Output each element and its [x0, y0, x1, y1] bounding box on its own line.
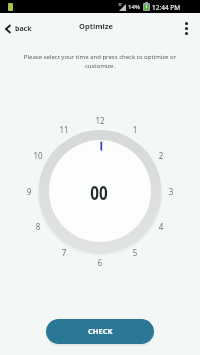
staticText: 3 [163, 186, 179, 197]
staticText: back [15, 24, 32, 34]
staticText: Optimize [56, 21, 136, 31]
staticText: 4 [153, 221, 169, 232]
staticText: 12:44 PM [152, 3, 198, 11]
staticText: 10 [30, 150, 46, 161]
staticText: 1 [127, 124, 143, 135]
button[interactable] [178, 18, 194, 38]
staticText: CHECK [88, 326, 113, 336]
staticText: 2 [153, 150, 169, 161]
staticText: 9 [21, 186, 37, 197]
staticText: 00 [90, 180, 108, 206]
staticText: 5 [127, 247, 143, 258]
staticText: 8 [30, 221, 46, 232]
staticText: 11 [56, 124, 72, 135]
button[interactable]: CHECK [46, 319, 154, 344]
staticText: 7 [56, 247, 72, 258]
button[interactable]: back [4, 20, 32, 38]
staticText: 14% [126, 3, 142, 11]
staticText: 12 [92, 115, 108, 126]
staticText: Please select your time and press check … [0, 53, 200, 70]
staticText: 6 [92, 257, 108, 268]
